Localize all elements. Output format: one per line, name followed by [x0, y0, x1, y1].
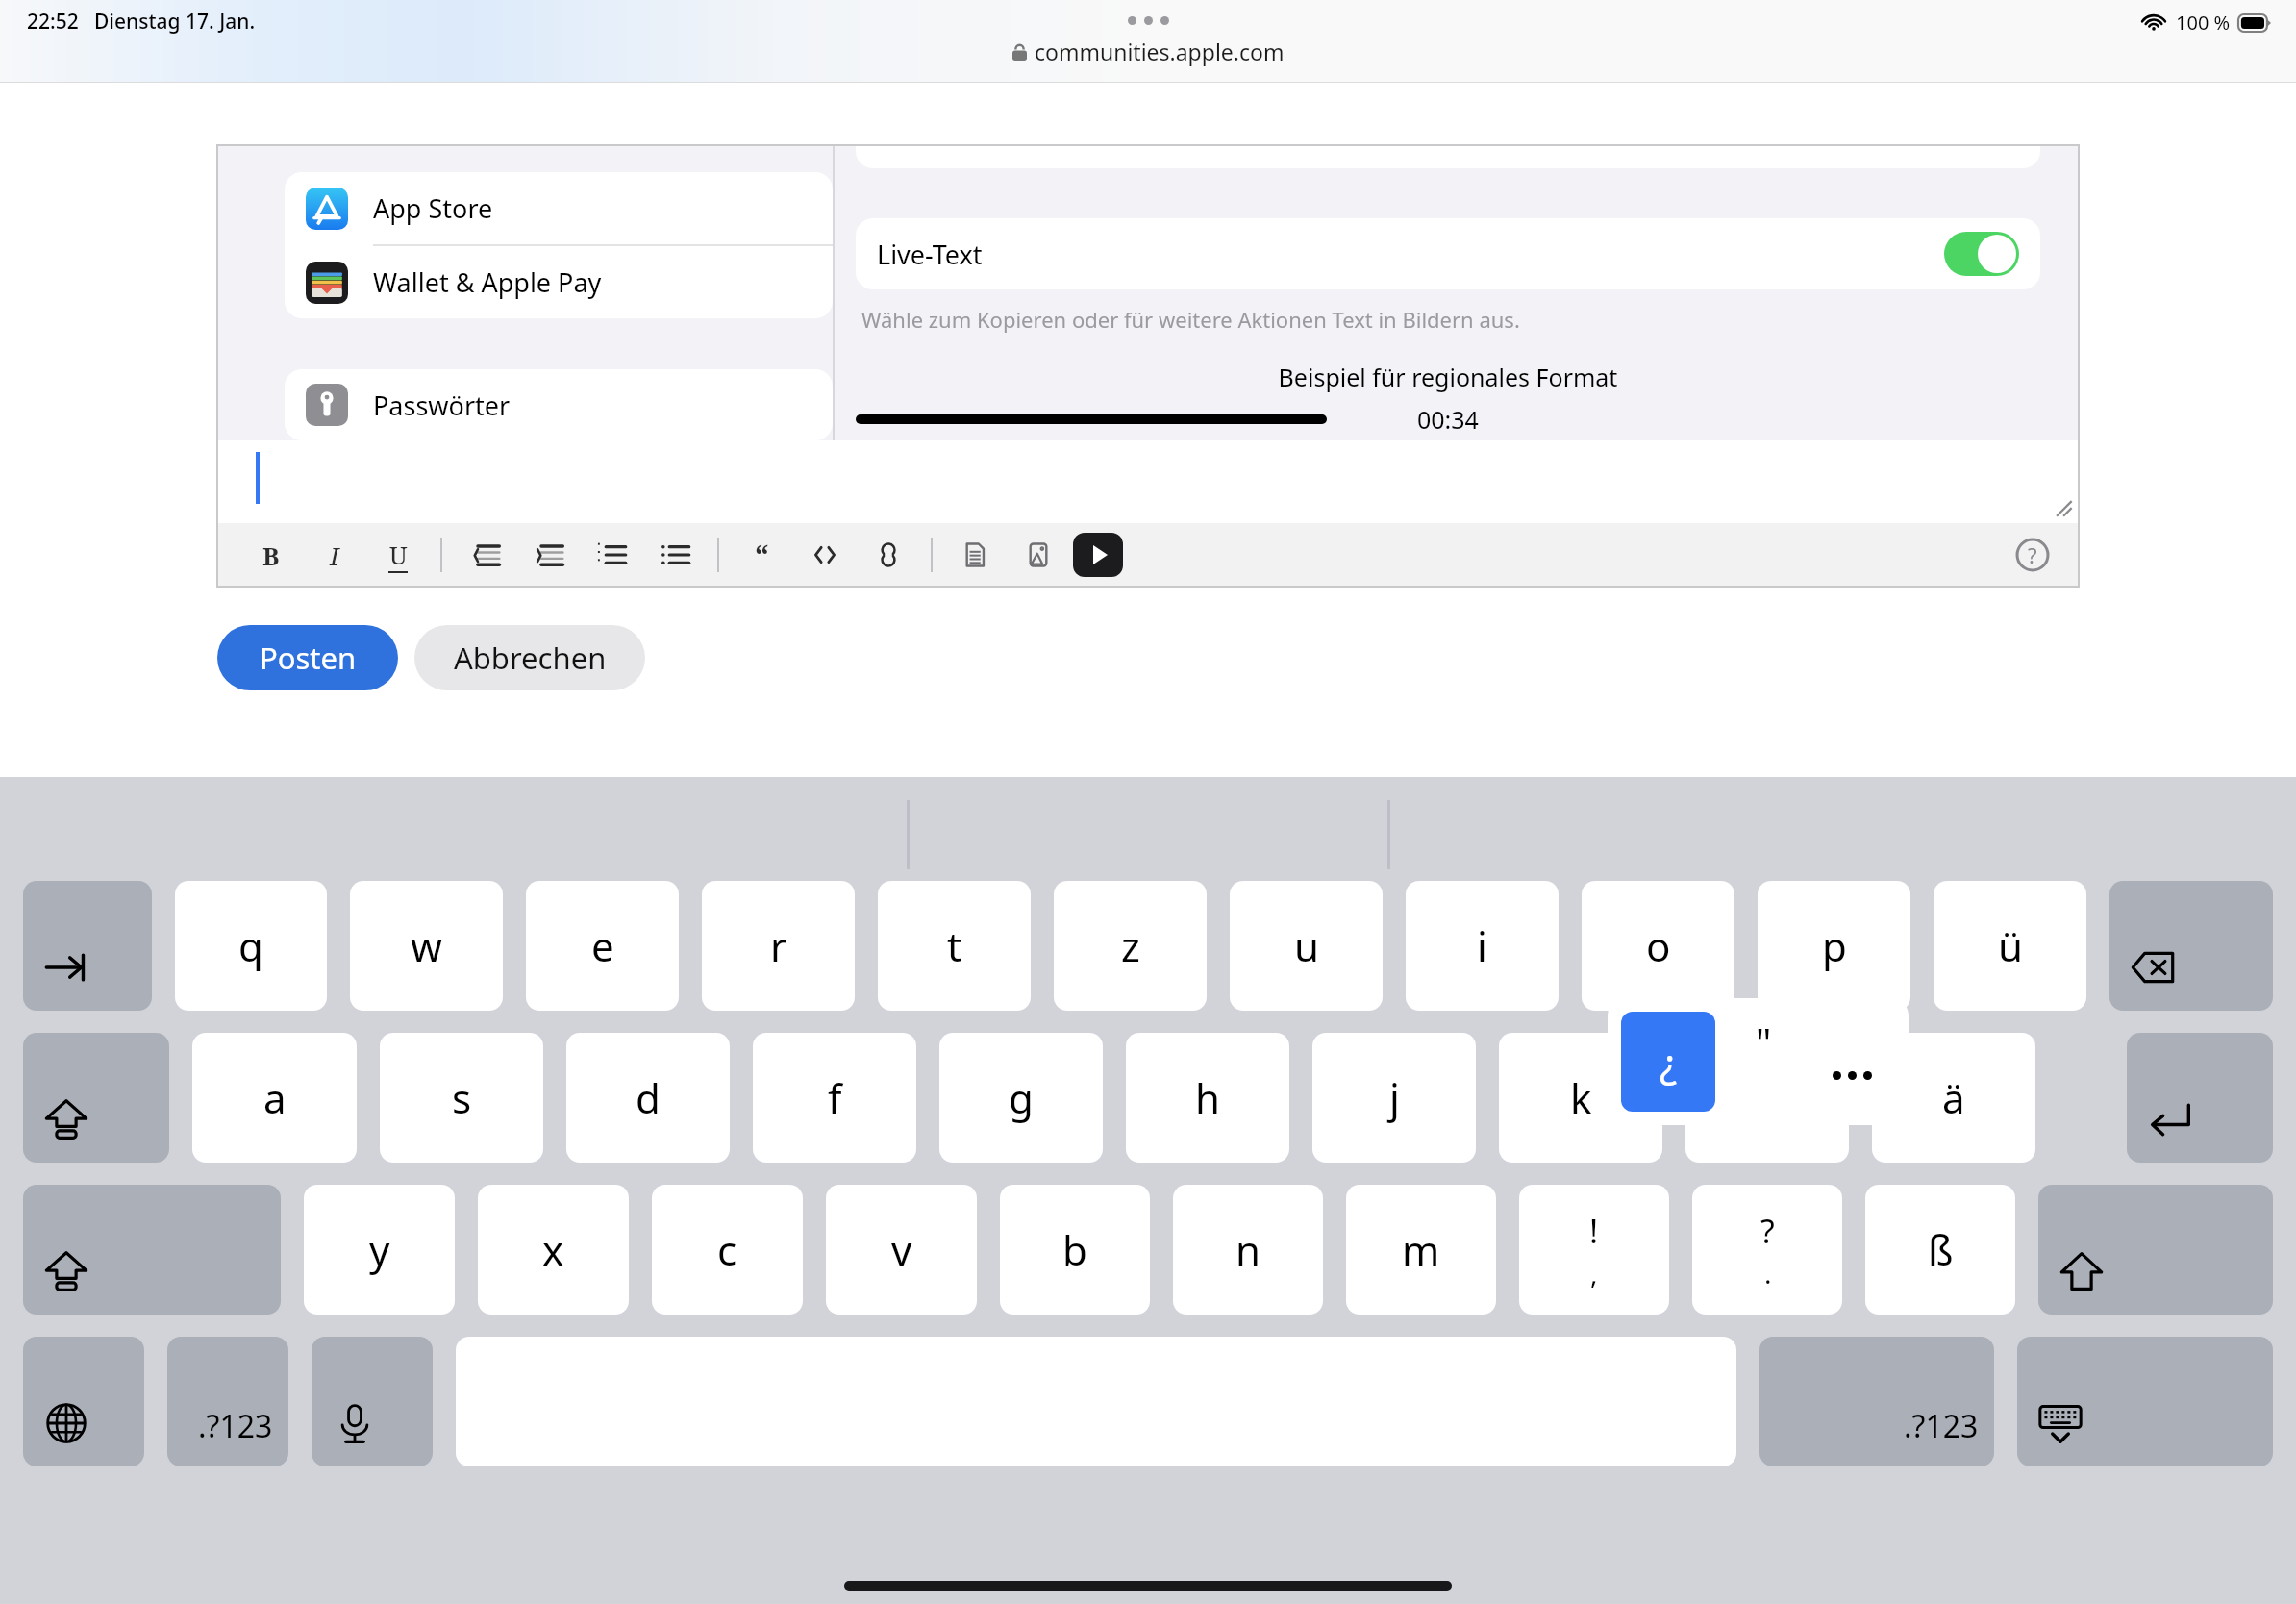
button[interactable]: Bulleted list [658, 533, 692, 577]
button[interactable]: v [826, 1185, 977, 1315]
button[interactable]: Change keyboard [23, 1337, 144, 1466]
staticText: v [891, 1222, 912, 1277]
button[interactable]: Return [2127, 1033, 2273, 1163]
button[interactable]: r [702, 881, 855, 1011]
staticText: q [238, 918, 263, 973]
staticText: o [1646, 918, 1671, 973]
staticText: communities.apple.com [1035, 37, 1285, 66]
button[interactable] [1944, 232, 2019, 276]
button[interactable]: Backspace [2109, 881, 2273, 1011]
staticText: s [452, 1070, 472, 1125]
button[interactable]: Outdent [467, 533, 502, 577]
staticText: .?123 [1904, 1405, 1979, 1447]
button[interactable]: g [939, 1033, 1103, 1163]
staticText: m [1402, 1222, 1440, 1277]
button[interactable]: ? [1692, 1185, 1842, 1315]
staticText: Dienstag 17. Jan. [94, 8, 256, 36]
button[interactable]: Posten [217, 625, 398, 690]
button[interactable]: j [1312, 1033, 1476, 1163]
button[interactable]: ¿ [1608, 998, 1909, 1125]
button[interactable]: Attach document [958, 533, 992, 577]
staticText: ä [1942, 1070, 1965, 1125]
button[interactable]: .?123 [167, 1337, 288, 1466]
button[interactable]: Abbrechen [414, 625, 645, 690]
staticText: ? [2028, 540, 2037, 569]
staticText: p [1822, 918, 1847, 973]
button[interactable]: h [1126, 1033, 1289, 1163]
button[interactable]: d [566, 1033, 730, 1163]
button[interactable]: a [192, 1033, 357, 1163]
button[interactable]: Caps lock [23, 1033, 169, 1163]
staticText: z [1121, 918, 1140, 973]
staticText: Wallet & Apple Pay [373, 264, 602, 300]
button[interactable]: Shift [2038, 1185, 2273, 1315]
button[interactable]: ö [1685, 1033, 1849, 1163]
button[interactable]: Passwörter [285, 369, 833, 440]
staticText: Wähle zum Kopieren oder für weitere Akti… [861, 305, 1520, 334]
staticText: r [770, 918, 787, 973]
button[interactable]: ! [1519, 1185, 1669, 1315]
button[interactable]: “ [744, 533, 779, 577]
button[interactable]: z [1054, 881, 1207, 1011]
button[interactable]: Help [2013, 536, 2052, 574]
button[interactable]: Hide keyboard [2017, 1337, 2273, 1466]
staticText: ! [1589, 1209, 1599, 1253]
staticText: " [1756, 1015, 1772, 1067]
button[interactable]: App Store [285, 172, 833, 244]
staticText: x [542, 1222, 564, 1277]
staticText: w [411, 918, 443, 973]
button[interactable]: e [526, 881, 679, 1011]
staticText: t [947, 918, 962, 973]
button[interactable]: U [381, 533, 415, 577]
staticText: ß [1928, 1222, 1954, 1277]
button[interactable]: i [1406, 881, 1559, 1011]
button[interactable]: I [317, 533, 352, 577]
button[interactable]: Wallet & Apple Pay [285, 246, 833, 318]
button[interactable]: ä [1872, 1033, 2035, 1163]
button[interactable]: Tab [23, 881, 152, 1011]
button[interactable]: b [1000, 1185, 1150, 1315]
button[interactable]: m [1346, 1185, 1496, 1315]
button[interactable]: c [652, 1185, 803, 1315]
button[interactable]: B [254, 533, 288, 577]
staticText: c [717, 1222, 737, 1277]
button[interactable]: Link [871, 533, 906, 577]
staticText: Posten [260, 638, 357, 678]
staticText: h [1195, 1070, 1220, 1125]
button[interactable]: Insert image [1021, 533, 1056, 577]
staticText: “ [755, 536, 769, 575]
button[interactable]: s [380, 1033, 543, 1163]
button[interactable]: Shift [23, 1185, 281, 1315]
button[interactable]: t [878, 881, 1031, 1011]
staticText: App Store [373, 190, 493, 226]
button[interactable]: o [1582, 881, 1734, 1011]
button[interactable]: Numbered list [594, 533, 629, 577]
staticText: d [636, 1070, 661, 1125]
button[interactable]: x [478, 1185, 629, 1315]
staticText: Passwörter [373, 388, 511, 423]
button[interactable]: Insert video [1073, 533, 1123, 577]
staticText: B [262, 539, 280, 572]
staticText: 100 % [2176, 10, 2231, 36]
staticText: ? [1760, 1209, 1775, 1253]
button[interactable]: y [304, 1185, 455, 1315]
button[interactable]: k [1499, 1033, 1662, 1163]
button[interactable]: Dictate [312, 1337, 433, 1466]
button[interactable]: Code [808, 533, 842, 577]
button[interactable]: .?123 [1759, 1337, 1994, 1466]
button[interactable]: ü [1934, 881, 2086, 1011]
button[interactable]: p [1758, 881, 1910, 1011]
staticText: e [591, 918, 614, 973]
button[interactable]: n [1173, 1185, 1323, 1315]
button[interactable]: ß [1865, 1185, 2015, 1315]
button[interactable]: u [1230, 881, 1383, 1011]
button[interactable]: Indent [531, 533, 565, 577]
button[interactable]: w [350, 881, 503, 1011]
staticText: Live-Text [877, 237, 983, 272]
button[interactable]: q [175, 881, 327, 1011]
staticText: 22:52 [27, 8, 79, 36]
staticText: , [1590, 1255, 1598, 1291]
button[interactable]: f [753, 1033, 916, 1163]
